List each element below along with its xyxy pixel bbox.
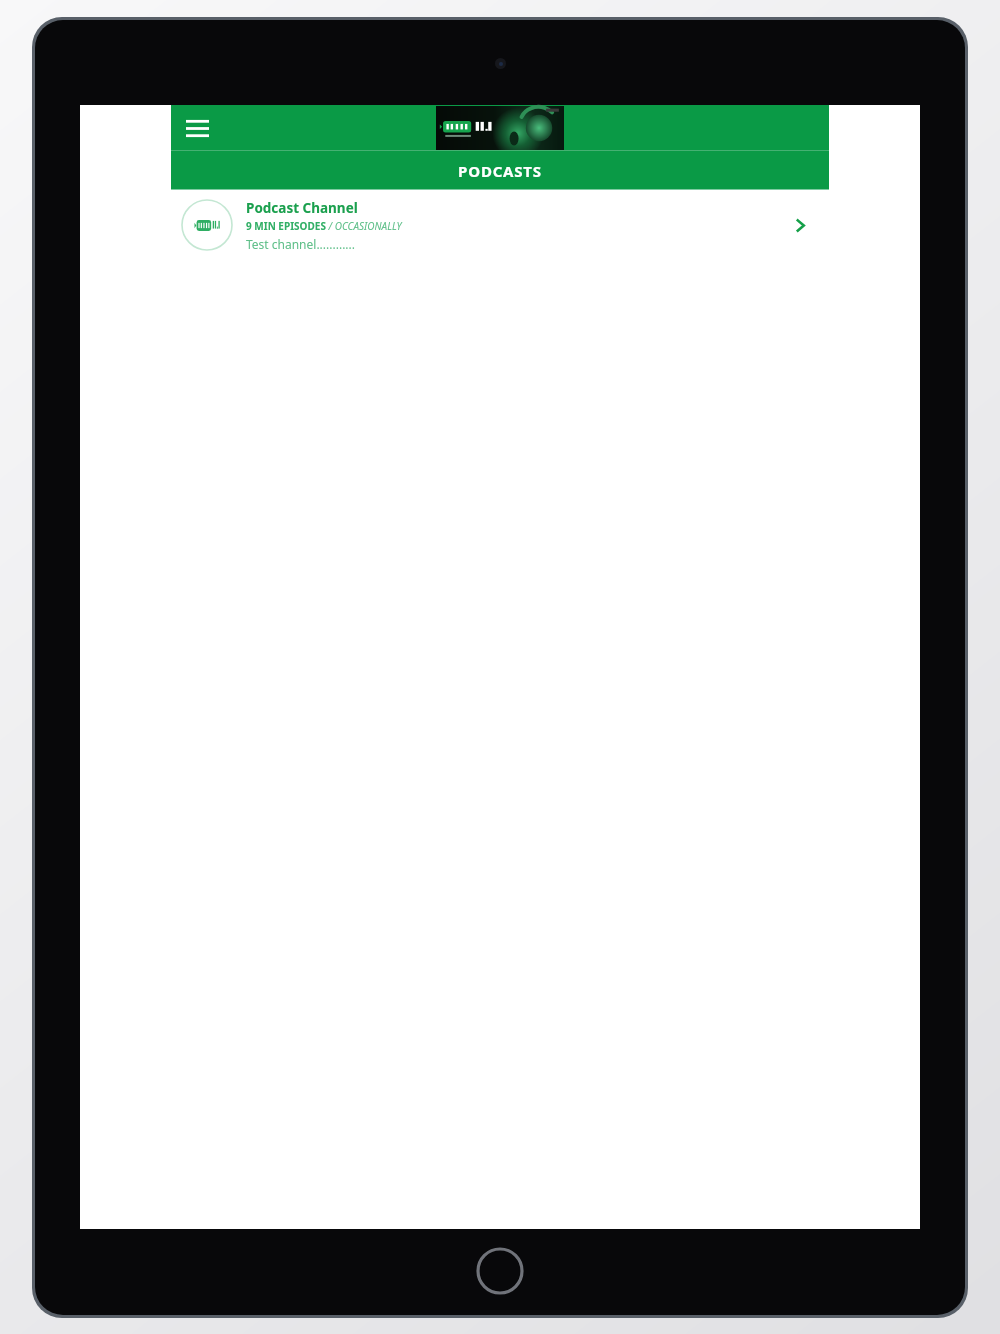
button[interactable]: MIX 93.8 home bbox=[436, 106, 564, 150]
staticText: Test channel............ bbox=[246, 236, 355, 252]
staticText: 9 MIN EPISODES / OCCASIONALLY bbox=[246, 219, 402, 233]
button[interactable]: Open Podcast Channel bbox=[783, 208, 817, 242]
staticText: PODCASTS bbox=[458, 161, 542, 181]
staticText: Podcast Channel bbox=[246, 199, 358, 217]
button[interactable]: Podcast Channel bbox=[171, 190, 829, 260]
button[interactable]: Open navigation menu bbox=[178, 109, 216, 147]
